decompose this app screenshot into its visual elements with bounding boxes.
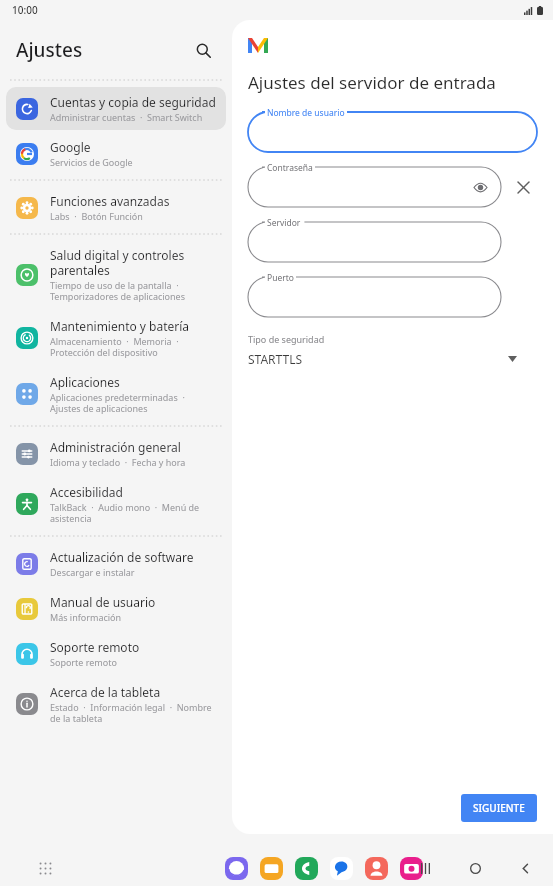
staticText: Ajustes: [16, 37, 83, 63]
button[interactable]: Funciones avanzadas: [6, 186, 226, 229]
staticText: Labs · Botón Función: [50, 210, 143, 222]
staticText: 10:00: [12, 3, 38, 17]
button[interactable]: Teléfono: [295, 857, 318, 880]
button[interactable]: STARTTLS: [248, 351, 517, 367]
staticText: Tiempo de uso de la pantalla · Temporiza…: [50, 279, 218, 302]
staticText: Mantenimiento y batería: [50, 318, 190, 334]
button[interactable]: Atrás: [513, 856, 537, 880]
staticText: Descargar e instalar: [50, 566, 135, 578]
staticText: Nombre de usuario: [267, 107, 345, 119]
staticText: Idioma y teclado · Fecha y hora: [50, 456, 186, 468]
staticText: Salud digital y controles parentales: [50, 247, 218, 278]
staticText: Servicios de Google: [50, 156, 133, 168]
staticText: Estado · Información legal · Nombre de l…: [50, 701, 218, 724]
staticText: Más información: [50, 611, 122, 623]
button[interactable]: Mis archivos: [260, 857, 283, 880]
button[interactable]: Mensajes: [330, 857, 353, 880]
button[interactable]: Soporte remoto: [6, 632, 226, 675]
button[interactable]: SIGUIENTE: [461, 794, 537, 822]
button[interactable]: Cámara: [400, 857, 423, 880]
staticText: Manual de usuario: [50, 594, 156, 610]
button[interactable]: Buscar: [188, 35, 218, 65]
button[interactable]: Cuentas y copia de seguridad: [6, 87, 226, 130]
button[interactable]: Mantenimiento y batería: [6, 311, 226, 365]
button[interactable]: Google: [6, 132, 226, 175]
button[interactable]: Acerca de la tableta: [6, 677, 226, 731]
staticText: Puerto: [267, 272, 294, 284]
staticText: Servidor: [267, 217, 301, 229]
button[interactable]: Internet: [225, 857, 248, 880]
button[interactable]: Administración general: [6, 432, 226, 475]
staticText: Administración general: [50, 439, 181, 455]
button[interactable]: Manual de usuario: [6, 587, 226, 630]
staticText: SIGUIENTE: [473, 801, 525, 815]
button[interactable]: Todas las aplicaciones: [33, 856, 57, 880]
staticText: TalkBack · Audio mono · Menú de asistenc…: [50, 501, 218, 524]
staticText: Acerca de la tableta: [50, 684, 161, 700]
staticText: Cuentas y copia de seguridad: [50, 94, 216, 110]
staticText: Aplicaciones predeterminadas · Ajustes d…: [50, 391, 218, 414]
staticText: Ajustes del servidor de entrada: [248, 71, 496, 94]
button[interactable]: Borrar: [509, 173, 537, 201]
staticText: Aplicaciones: [50, 374, 120, 390]
staticText: Contraseña: [267, 162, 313, 174]
staticText: Soporte remoto: [50, 656, 117, 668]
staticText: Tipo de seguridad: [248, 333, 325, 345]
staticText: Administrar cuentas · Smart Switch: [50, 111, 203, 123]
staticText: Funciones avanzadas: [50, 193, 170, 209]
button[interactable]: Accesibilidad: [6, 477, 226, 531]
button[interactable]: Contactos: [365, 857, 388, 880]
button[interactable]: Inicio: [463, 856, 487, 880]
button[interactable]: Mostrar contraseña: [469, 176, 491, 198]
staticText: Almacenamiento · Memoria · Protección de…: [50, 335, 218, 358]
button[interactable]: Aplicaciones: [6, 367, 226, 421]
button[interactable]: Salud digital y controles parentales: [6, 240, 226, 309]
staticText: Accesibilidad: [50, 484, 123, 500]
button[interactable]: Actualización de software: [6, 542, 226, 585]
staticText: STARTTLS: [248, 351, 508, 367]
staticText: Actualización de software: [50, 549, 194, 565]
staticText: Soporte remoto: [50, 639, 140, 655]
button[interactable]: Recientes: [413, 856, 437, 880]
staticText: Google: [50, 139, 91, 155]
